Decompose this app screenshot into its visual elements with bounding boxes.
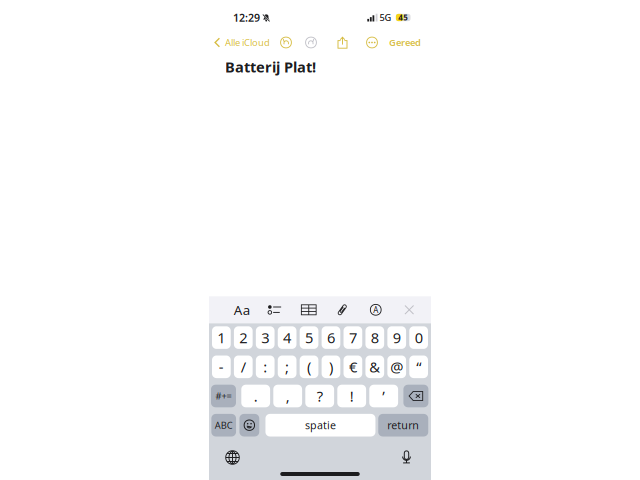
- button[interactable]: return: [378, 414, 428, 436]
- button[interactable]: &: [365, 355, 384, 378]
- button[interactable]: Delete: [403, 385, 428, 407]
- button[interactable]: 7: [343, 326, 362, 349]
- staticText: 5G: [379, 11, 391, 24]
- staticText: 5: [305, 328, 313, 347]
- staticText: /: [241, 357, 246, 377]
- button[interactable]: Undo: [280, 36, 292, 48]
- staticText: @: [390, 357, 403, 377]
- button[interactable]: ’: [369, 385, 398, 407]
- staticText: spatie: [305, 418, 336, 432]
- staticText: 12:29: [233, 10, 260, 25]
- button[interactable]: Alle iCloud: [214, 36, 272, 49]
- staticText: 7: [349, 328, 357, 347]
- staticText: ’: [382, 386, 385, 406]
- staticText: .: [254, 386, 258, 406]
- staticText: 45: [398, 12, 408, 23]
- staticText: 0: [415, 328, 423, 347]
- staticText: -: [219, 357, 224, 377]
- staticText: 4: [283, 328, 291, 347]
- button[interactable]: “: [409, 355, 428, 378]
- staticText: 3: [261, 328, 269, 347]
- button[interactable]: 4: [278, 326, 296, 349]
- button[interactable]: Gereed: [389, 36, 421, 49]
- button[interactable]: ): [322, 355, 340, 378]
- staticText: Gereed: [389, 36, 421, 49]
- staticText: :: [263, 357, 267, 377]
- staticText: ): [329, 357, 333, 377]
- staticText: Aa: [234, 301, 250, 319]
- button[interactable]: Checklist: [258, 299, 292, 321]
- button[interactable]: !: [337, 385, 366, 407]
- staticText: ;: [285, 357, 289, 377]
- button[interactable]: €: [343, 355, 362, 378]
- staticText: 2: [239, 328, 247, 347]
- staticText: ?: [317, 386, 323, 406]
- button[interactable]: ;: [278, 355, 296, 378]
- staticText: 6: [327, 328, 335, 347]
- staticText: !: [350, 386, 354, 406]
- button[interactable]: Text format: [225, 299, 258, 321]
- button[interactable]: @: [387, 355, 406, 378]
- button[interactable]: 5: [300, 326, 318, 349]
- button[interactable]: /: [234, 355, 253, 378]
- button[interactable]: 8: [365, 326, 384, 349]
- button[interactable]: 1: [212, 326, 231, 349]
- button[interactable]: #+=: [211, 385, 236, 407]
- button[interactable]: 0: [409, 326, 428, 349]
- button[interactable]: Attach file: [325, 299, 359, 321]
- button[interactable]: -: [212, 355, 231, 378]
- staticText: 1: [217, 328, 225, 347]
- button[interactable]: Hide keyboard: [392, 299, 426, 321]
- staticText: ABC: [215, 419, 233, 431]
- button[interactable]: ?: [305, 385, 334, 407]
- button[interactable]: 2: [234, 326, 253, 349]
- button[interactable]: Share: [337, 36, 348, 49]
- button[interactable]: :: [256, 355, 274, 378]
- button[interactable]: 6: [322, 326, 340, 349]
- button[interactable]: ABC: [211, 414, 236, 436]
- button[interactable]: ,: [273, 385, 302, 407]
- button[interactable]: 3: [256, 326, 274, 349]
- staticText: (: [307, 357, 311, 377]
- button[interactable]: Markup: [359, 299, 392, 321]
- button[interactable]: Dictation: [401, 450, 412, 465]
- staticText: Batterij Plat!: [225, 57, 316, 76]
- staticText: Alle iCloud: [225, 36, 270, 49]
- button[interactable]: spatie: [265, 414, 375, 436]
- button[interactable]: (: [300, 355, 318, 378]
- staticText: return: [387, 418, 419, 432]
- staticText: 9: [393, 328, 401, 347]
- staticText: €: [349, 357, 357, 377]
- button[interactable]: More options: [366, 36, 378, 48]
- staticText: &: [369, 357, 380, 377]
- button[interactable]: Emoji: [239, 414, 259, 436]
- staticText: 8: [371, 328, 379, 347]
- staticText: A: [373, 304, 378, 315]
- button[interactable]: 9: [387, 326, 406, 349]
- staticText: “: [416, 357, 421, 377]
- staticText: #+=: [215, 390, 231, 402]
- staticText: ,: [286, 386, 290, 406]
- button[interactable]: .: [241, 385, 270, 407]
- button[interactable]: Next keyboard: [225, 450, 240, 465]
- button[interactable]: Redo: [305, 36, 317, 48]
- button[interactable]: Table: [292, 299, 325, 321]
